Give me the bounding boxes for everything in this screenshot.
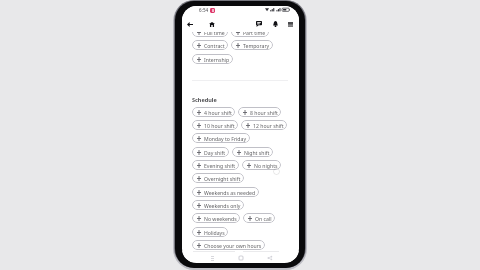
button[interactable]: Full time bbox=[192, 32, 228, 37]
button[interactable]: Weekends as needed bbox=[192, 187, 259, 197]
staticText: 6:54 bbox=[199, 7, 209, 13]
button[interactable]: Menu bbox=[284, 19, 296, 32]
button[interactable]: Weekends only bbox=[192, 200, 244, 210]
staticText: Temporary bbox=[243, 42, 270, 49]
staticText: Evening shift bbox=[204, 162, 236, 169]
button[interactable]: Part time bbox=[231, 32, 269, 37]
staticText: Internship bbox=[204, 56, 230, 63]
button[interactable]: Choose your own hours bbox=[192, 240, 265, 250]
staticText: 4 hour shift bbox=[204, 109, 232, 116]
button[interactable]: Recents bbox=[207, 254, 218, 262]
staticText: Holidays bbox=[204, 229, 225, 236]
staticText: Monday to Friday bbox=[204, 135, 247, 142]
button[interactable]: 12 hour shift bbox=[241, 120, 287, 130]
button[interactable]: Notifications bbox=[269, 19, 281, 32]
button[interactable]: Back bbox=[183, 19, 196, 32]
button[interactable]: Day shift bbox=[192, 147, 229, 157]
button[interactable]: 8 hour shift bbox=[238, 107, 281, 117]
button[interactable]: Home bbox=[235, 254, 246, 262]
button[interactable]: On call bbox=[243, 213, 275, 223]
staticText: Weekends as needed bbox=[204, 189, 256, 196]
button[interactable]: Evening shift bbox=[192, 160, 239, 170]
staticText: Choose your own hours bbox=[204, 242, 262, 249]
staticText: 12 hour shift bbox=[253, 122, 284, 129]
button[interactable]: 4 hour shift bbox=[192, 107, 235, 117]
staticText: 10 hour shift bbox=[204, 122, 235, 129]
button[interactable]: Home bbox=[205, 19, 218, 32]
staticText: No weekends bbox=[204, 215, 237, 222]
staticText: 8 hour shift bbox=[250, 109, 278, 116]
staticText: Contract bbox=[204, 42, 225, 49]
button[interactable]: Back bbox=[264, 254, 275, 262]
button[interactable]: Night shift bbox=[232, 147, 273, 157]
staticText: Weekends only bbox=[204, 202, 241, 209]
staticText: No nights bbox=[254, 162, 278, 169]
staticText: Part time bbox=[243, 32, 266, 36]
button[interactable]: Overnight shift bbox=[192, 173, 244, 183]
button[interactable]: Temporary bbox=[231, 40, 273, 50]
staticText: Night shift bbox=[244, 149, 270, 156]
button[interactable]: 10 hour shift bbox=[192, 120, 238, 130]
button[interactable]: No nights bbox=[242, 160, 281, 170]
button[interactable]: Internship bbox=[192, 54, 233, 64]
staticText: Schedule bbox=[192, 96, 217, 103]
button[interactable]: Messages bbox=[252, 19, 265, 32]
staticText: On call bbox=[255, 215, 272, 222]
staticText: Day shift bbox=[204, 149, 226, 156]
button[interactable]: Monday to Friday bbox=[192, 133, 250, 143]
button[interactable]: Holidays bbox=[192, 227, 228, 237]
staticText: Overnight shift bbox=[204, 175, 241, 182]
button[interactable]: No weekends bbox=[192, 213, 240, 223]
button[interactable]: Contract bbox=[192, 40, 228, 50]
staticText: Full time bbox=[204, 32, 225, 36]
